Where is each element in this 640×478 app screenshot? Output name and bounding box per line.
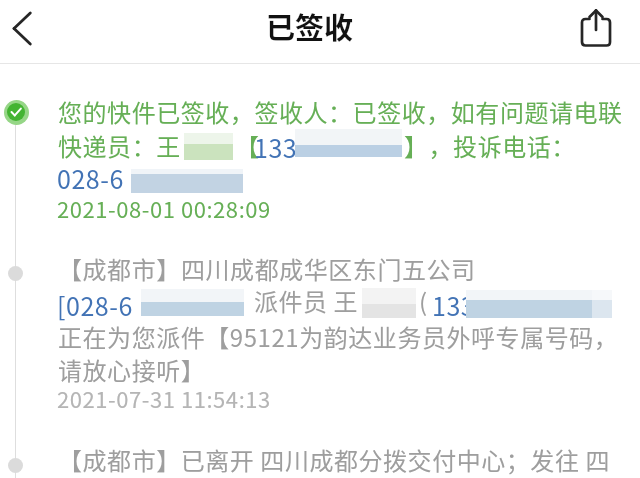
staticText: ( xyxy=(419,283,428,318)
staticText: [028-6 xyxy=(57,287,133,323)
staticText: 已签收 xyxy=(266,5,354,47)
staticText: 028-6 xyxy=(57,160,124,196)
staticText: 133 xyxy=(254,129,298,165)
staticText: 】，投诉电话： xyxy=(404,128,576,163)
staticText: 2021-07-31 11:54:13 xyxy=(57,382,271,414)
button[interactable]: Back xyxy=(0,0,56,56)
staticText: 【成都市】已离开 四川成都分拨交付中心；发往 四 xyxy=(58,442,610,477)
staticText: 您的快件已签收，签收人：已签收，如有问题请电联 xyxy=(58,94,623,129)
staticText: 2021-08-01 00:28:09 xyxy=(57,192,271,224)
staticText: 【 xyxy=(235,128,260,163)
button[interactable]: Share xyxy=(570,0,626,56)
staticText: 派件员 王 xyxy=(254,283,359,318)
staticText: 【成都市】 xyxy=(58,251,181,286)
staticText: 快递员：王 xyxy=(58,128,181,163)
staticText: 请放心接听】 xyxy=(58,352,206,387)
staticText: 正在为您派件【95121为韵达业务员外呼专属号码， xyxy=(58,319,619,354)
staticText: 133 xyxy=(432,287,476,323)
staticText: 四川成都成华区东门五公司 xyxy=(181,251,476,286)
